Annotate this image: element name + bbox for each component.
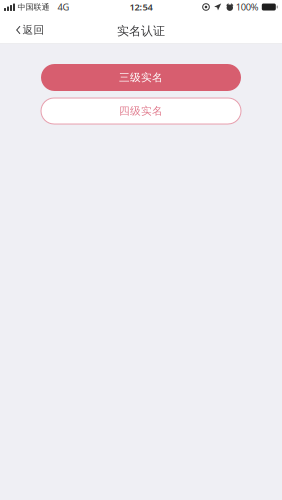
staticText: 100% — [236, 1, 259, 13]
staticText: 四级实名 — [119, 104, 163, 117]
button[interactable]: 四级实名 — [41, 98, 241, 124]
staticText: 中国联通 — [17, 2, 49, 12]
staticText: 12:54 — [129, 1, 152, 13]
button[interactable]: 三级实名 — [41, 64, 241, 91]
button[interactable]: 返回 — [0, 18, 55, 44]
staticText: 实名认证 — [117, 24, 165, 38]
staticText: 三级实名 — [119, 71, 163, 84]
staticText: 4G — [57, 1, 69, 13]
staticText: 返回 — [23, 23, 45, 36]
